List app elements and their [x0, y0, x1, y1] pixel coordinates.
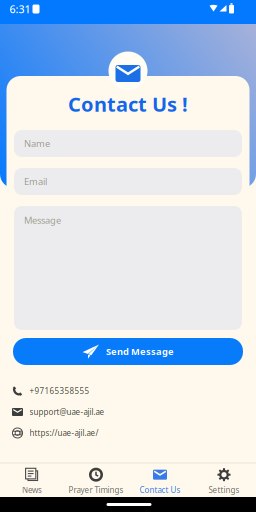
button[interactable]: News — [0, 465, 64, 497]
staticText: +97165358555 — [29, 386, 89, 396]
staticText: Settings — [208, 485, 239, 495]
button[interactable]: Send Message — [13, 338, 243, 365]
button[interactable]: support@uae-ajil.ae — [12, 406, 244, 417]
staticText: Contact Us — [139, 485, 180, 495]
staticText: Prayer Timings — [68, 485, 123, 495]
staticText: Contact Us ! — [68, 91, 188, 117]
staticText: News — [22, 485, 42, 495]
button[interactable]: Contact Us — [128, 465, 192, 497]
staticText: Email — [24, 175, 47, 188]
staticText: Name — [24, 137, 50, 150]
staticText: Message — [24, 214, 61, 226]
textField[interactable]: Email — [24, 175, 232, 188]
staticText: 6:31 — [9, 2, 30, 16]
textField[interactable]: Name — [24, 137, 232, 150]
staticText: Send Message — [106, 345, 174, 358]
button[interactable]: Prayer Timings — [64, 465, 128, 497]
staticText: support@uae-ajil.ae — [29, 407, 104, 417]
textField[interactable]: Message — [24, 214, 232, 226]
button[interactable]: Settings — [192, 465, 256, 497]
button[interactable]: https://uae-ajil.ae/ — [12, 427, 244, 438]
staticText: https://uae-ajil.ae/ — [29, 428, 98, 438]
button[interactable]: +97165358555 — [12, 385, 244, 396]
